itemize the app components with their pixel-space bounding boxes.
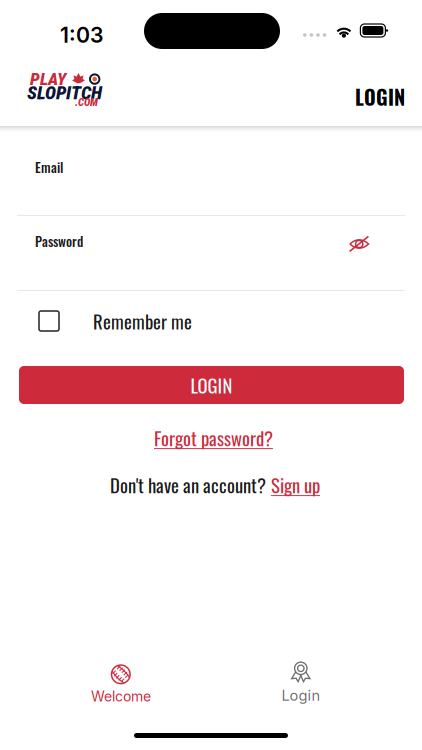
staticText: Email: [35, 157, 63, 177]
staticText: Sign up: [271, 471, 320, 499]
staticText: .COM: [75, 96, 98, 108]
staticText: Password: [35, 231, 83, 251]
staticText: PLAY: [30, 69, 66, 89]
staticText: Forgot password?: [154, 424, 273, 452]
button[interactable]: Show password: [349, 237, 370, 251]
staticText: LOGIN: [190, 371, 232, 399]
button[interactable]: LOGIN: [355, 82, 405, 112]
button[interactable]: Remember me: [39, 308, 239, 334]
staticText: 1:03: [60, 22, 104, 48]
staticText: Login: [281, 687, 320, 704]
staticText: LOGIN: [355, 82, 405, 112]
button[interactable]: Welcome: [46, 662, 196, 708]
button[interactable]: Forgot password?: [154, 424, 273, 452]
staticText: Don't have an account?: [110, 471, 266, 499]
staticText: SLOPITCH: [27, 82, 102, 104]
staticText: Remember me: [93, 307, 192, 335]
button[interactable]: Sign up: [271, 471, 320, 499]
staticText: Welcome: [91, 688, 151, 705]
button[interactable]: Login: [226, 660, 376, 706]
button[interactable]: LOGIN: [19, 366, 404, 404]
